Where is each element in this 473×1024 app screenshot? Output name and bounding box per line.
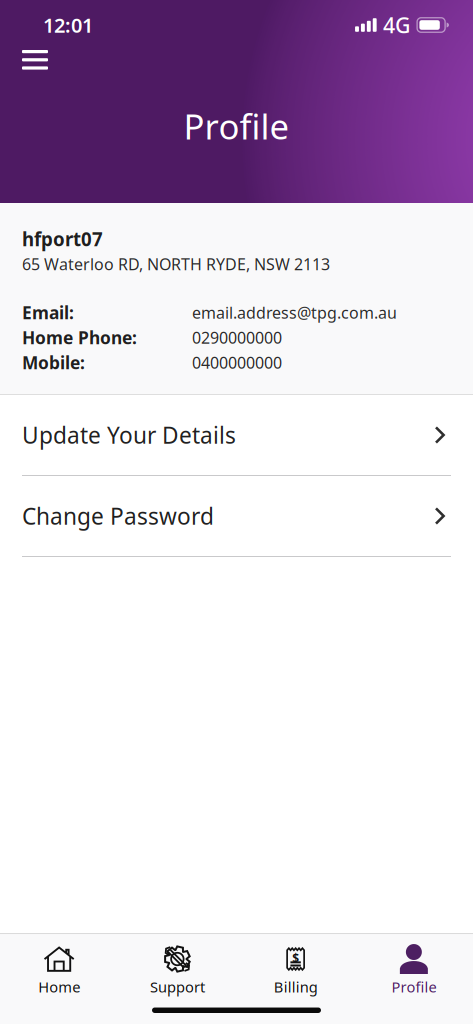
staticText: Home (38, 977, 80, 996)
button[interactable]: Change Password (0, 476, 473, 557)
button[interactable]: Update Your Details (0, 395, 473, 476)
button[interactable]: Profile (355, 934, 473, 1000)
staticText: 12:01 (43, 12, 93, 38)
button[interactable]: $ (236, 934, 355, 1000)
staticText: 0290000000 (192, 327, 282, 348)
staticText: Update Your Details (22, 420, 236, 450)
staticText: 0400000000 (192, 352, 282, 373)
button[interactable]: Menu (0, 42, 62, 78)
staticText: hfport07 (22, 227, 103, 251)
staticText: Mobile: (22, 351, 85, 374)
staticText: Profile (183, 103, 289, 149)
staticText: Support (150, 977, 205, 996)
staticText: email.address@tpg.com.au (192, 302, 397, 323)
button[interactable]: Home (0, 934, 118, 1000)
staticText: Profile (391, 977, 436, 996)
staticText: Email: (22, 301, 74, 324)
staticText: Billing (274, 977, 318, 996)
staticText: $ (292, 950, 299, 966)
staticText: Home Phone: (22, 326, 137, 349)
staticText: 4G (383, 11, 411, 39)
staticText: 65 Waterloo RD, NORTH RYDE, NSW 2113 (22, 253, 330, 275)
staticText: Change Password (22, 501, 214, 531)
button[interactable]: Support (118, 934, 236, 1000)
